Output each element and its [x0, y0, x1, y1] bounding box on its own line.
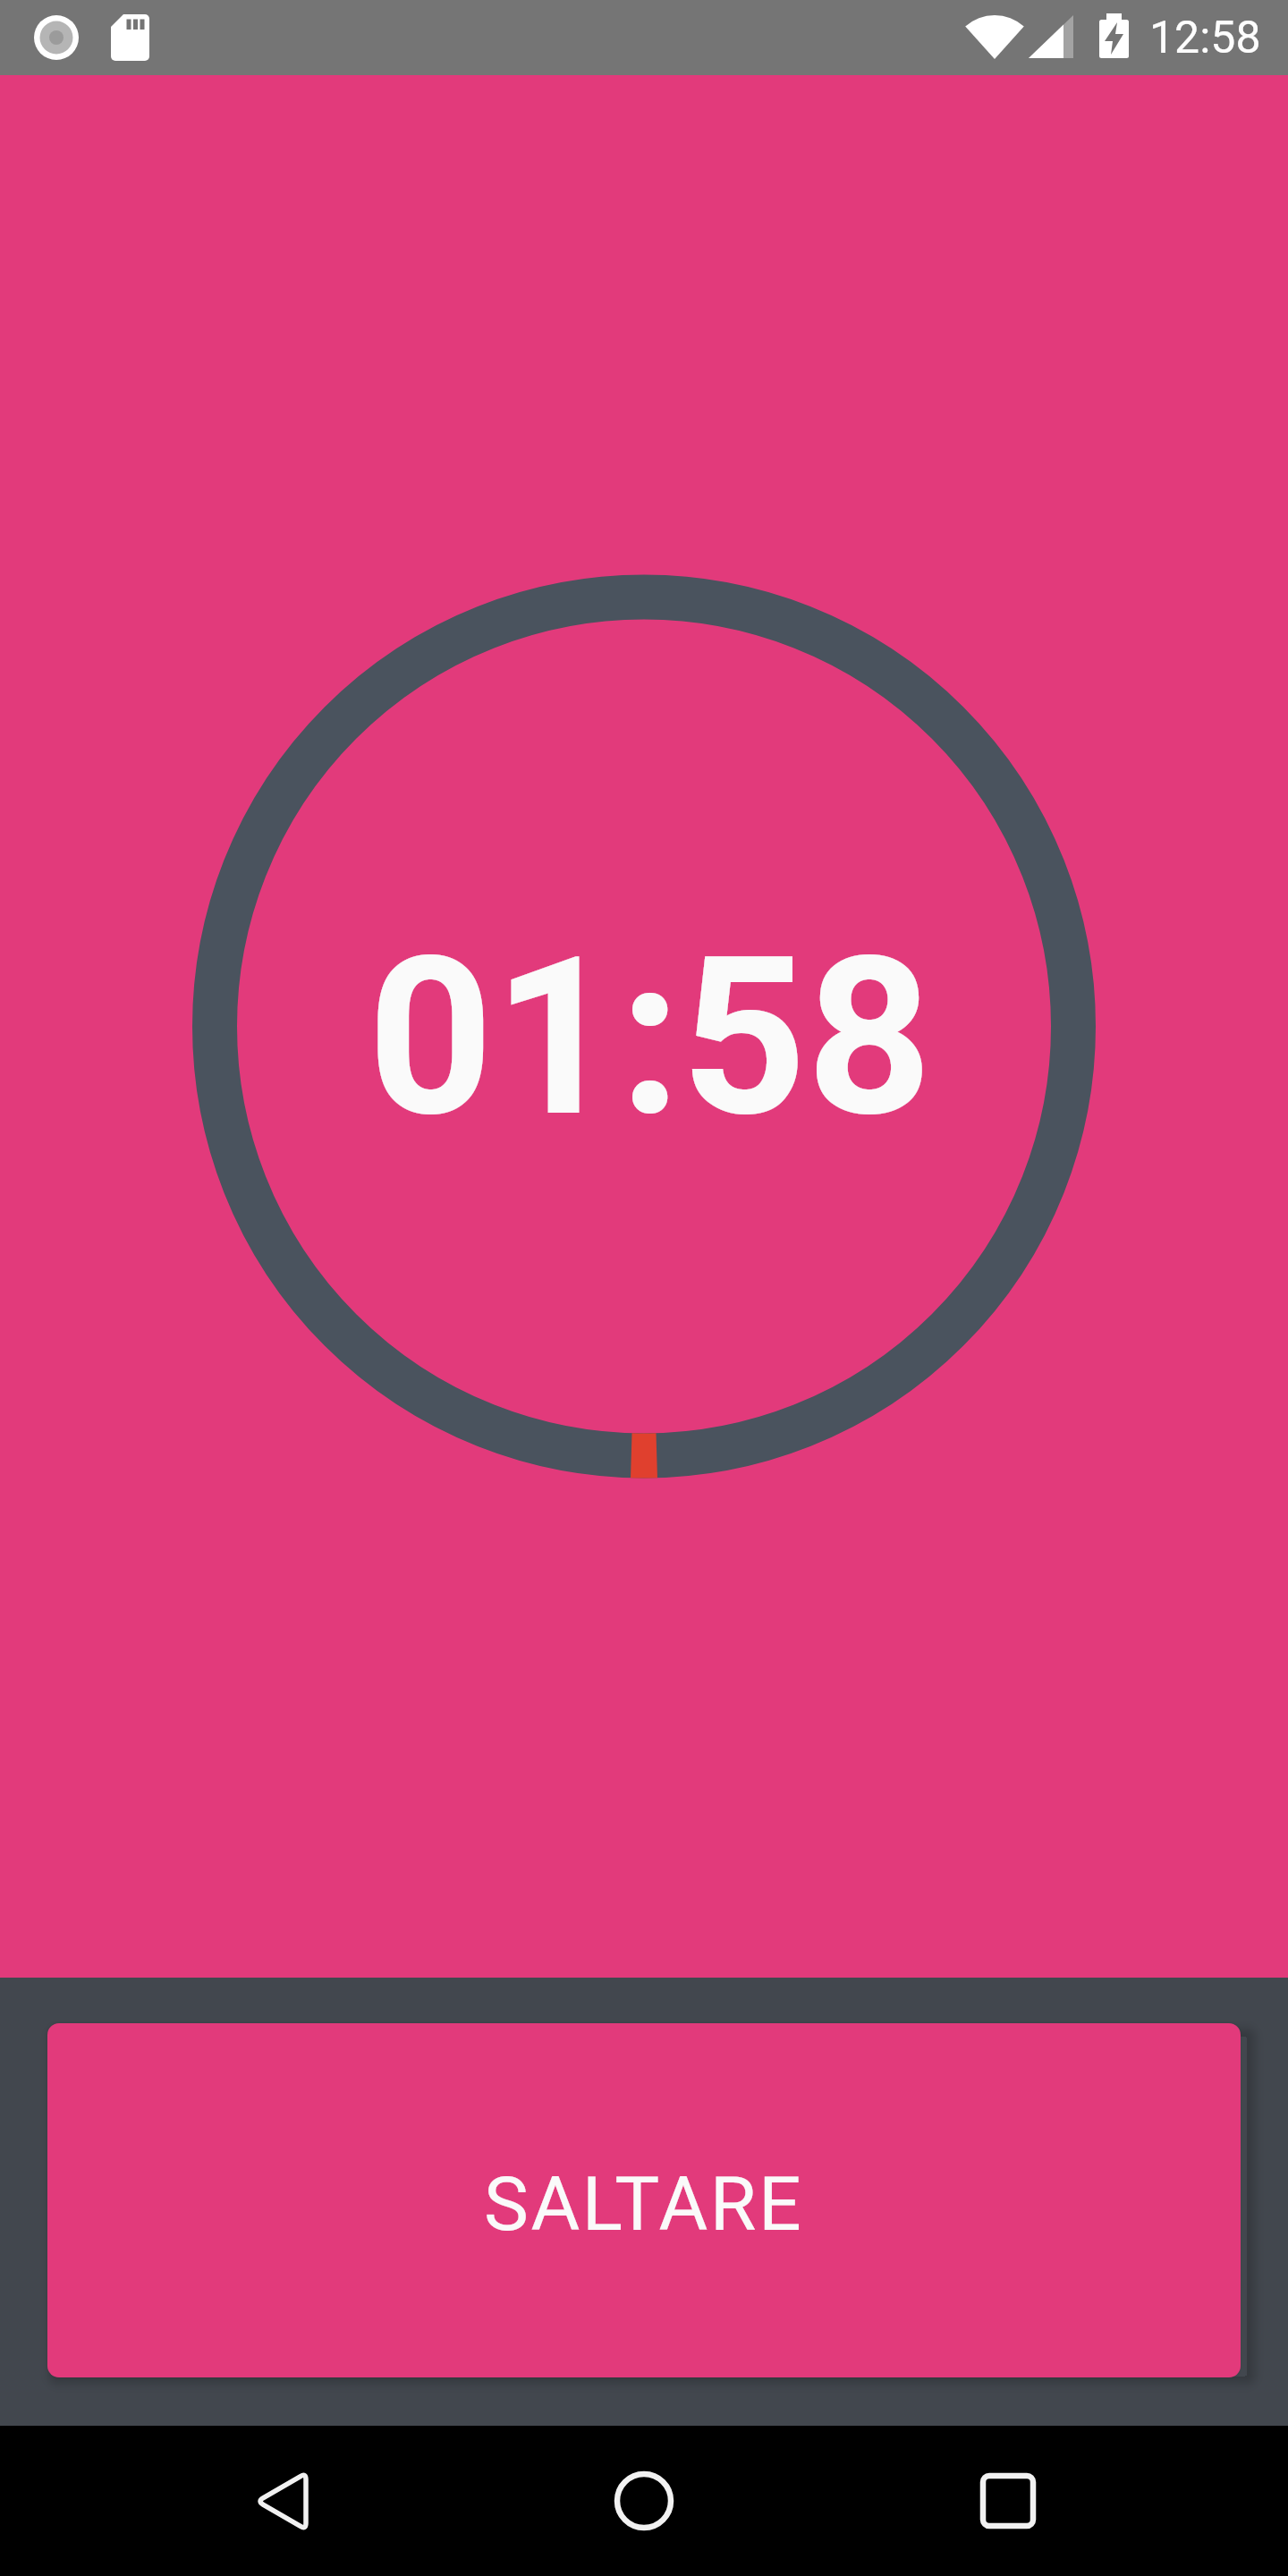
staticText: SALTARE	[484, 2160, 804, 2248]
button[interactable]	[224, 2426, 378, 2576]
button[interactable]	[581, 2426, 736, 2576]
staticText: 12:58	[1149, 12, 1261, 64]
button[interactable]: SALTARE	[47, 2023, 1241, 2377]
button[interactable]	[944, 2426, 1098, 2576]
staticText: 01:58	[368, 910, 933, 1166]
